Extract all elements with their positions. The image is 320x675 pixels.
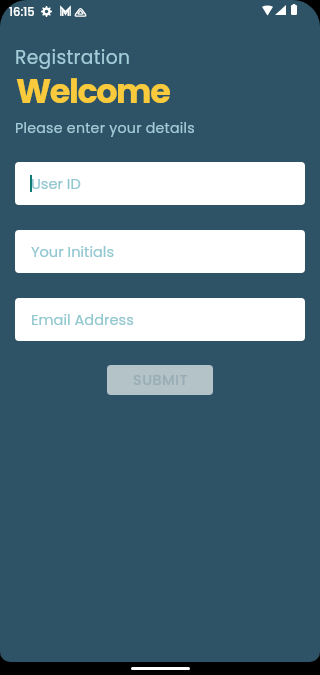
staticText: Email Address: [31, 310, 134, 330]
button[interactable]: SUBMIT: [107, 365, 213, 395]
other: Gmail: [60, 6, 71, 17]
staticText: 16:15: [9, 4, 35, 20]
staticText: Your Initials: [31, 242, 115, 262]
staticText: Please enter your details: [15, 118, 196, 138]
staticText: Registration: [15, 44, 131, 70]
staticText: SUBMIT: [133, 370, 188, 390]
other: Drive: [75, 6, 86, 17]
staticText: User ID: [31, 174, 81, 194]
button[interactable]: Your Initials: [15, 230, 305, 273]
button[interactable]: User ID: [15, 162, 305, 205]
staticText: Welcome: [16, 68, 170, 115]
other: Settings: [41, 6, 52, 17]
button[interactable]: Email Address: [15, 298, 305, 341]
